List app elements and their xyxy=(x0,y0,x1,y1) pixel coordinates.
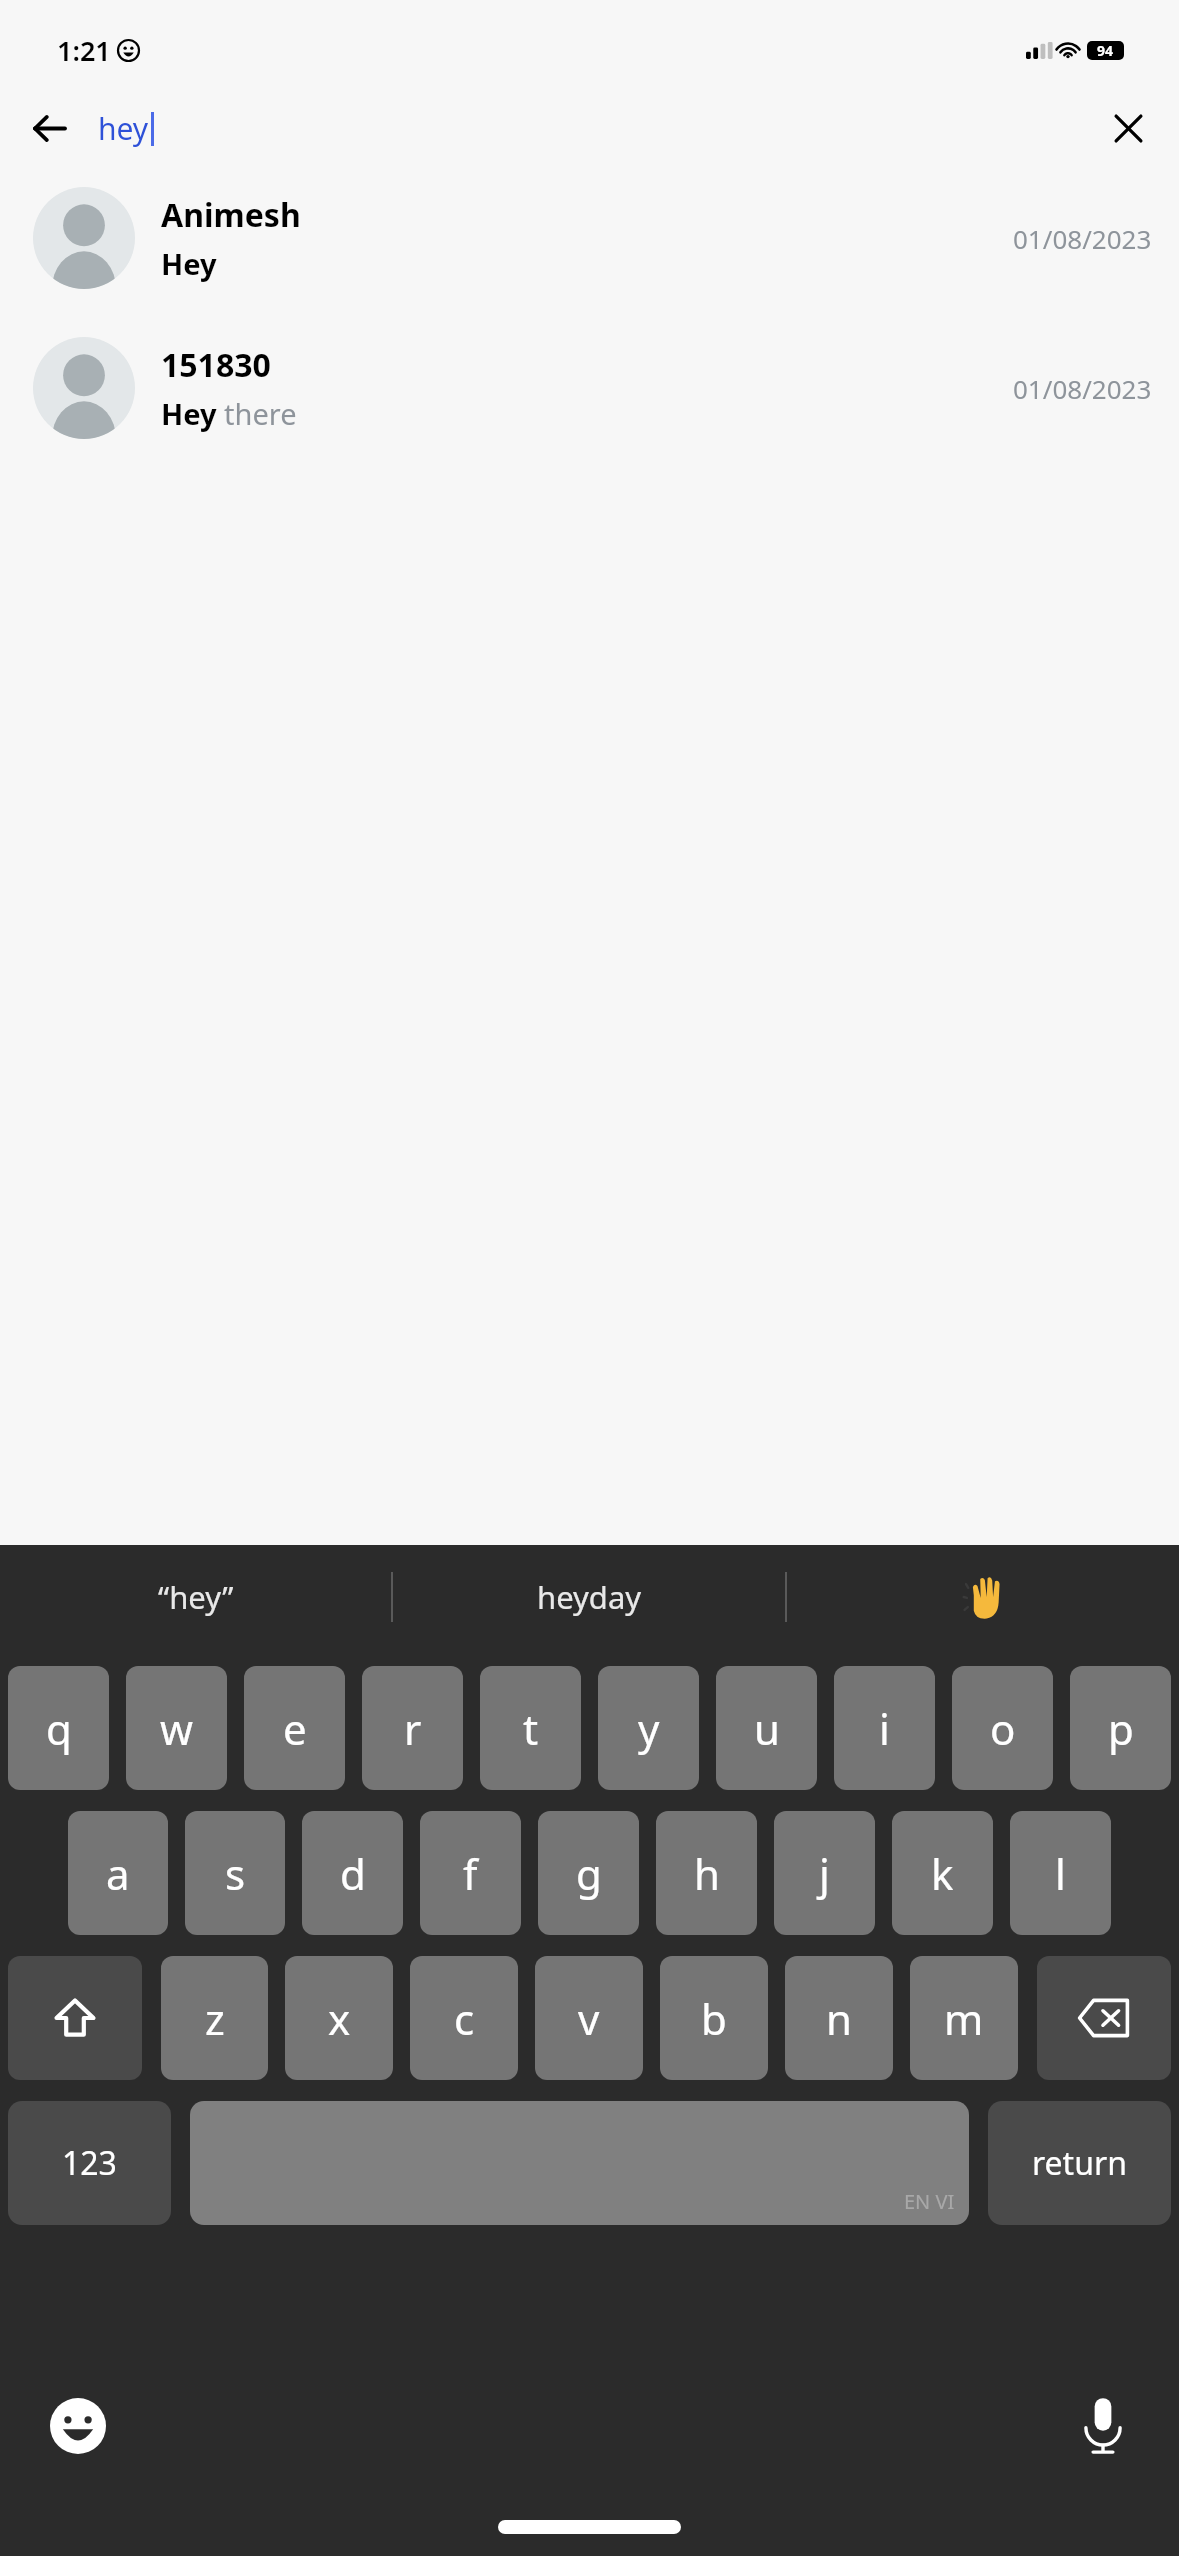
staticText: q xyxy=(46,1700,72,1757)
staticText: 151830 xyxy=(161,343,271,387)
staticText: k xyxy=(931,1845,954,1902)
button[interactable]: i xyxy=(834,1666,935,1790)
button[interactable]: q xyxy=(8,1666,109,1790)
staticText: s xyxy=(225,1845,246,1902)
button[interactable] xyxy=(787,1545,1179,1648)
button[interactable]: 123 xyxy=(8,2101,171,2225)
button[interactable]: y xyxy=(598,1666,699,1790)
button[interactable]: r xyxy=(362,1666,463,1790)
button[interactable]: j xyxy=(774,1811,875,1935)
staticText: m xyxy=(944,1990,984,2047)
staticText: 01/08/2023 xyxy=(1013,221,1152,256)
staticText: 94 xyxy=(1097,41,1114,60)
staticText: b xyxy=(701,1990,727,2047)
button[interactable]: k xyxy=(892,1811,993,1935)
staticText: e xyxy=(283,1700,307,1757)
staticText: w xyxy=(160,1700,194,1757)
staticText: l xyxy=(1055,1845,1066,1902)
button[interactable]: l xyxy=(1010,1811,1111,1935)
button[interactable]: g xyxy=(538,1811,639,1935)
staticText: y xyxy=(638,1700,660,1757)
button[interactable]: Shift xyxy=(8,1956,142,2080)
staticText: c xyxy=(454,1990,475,2047)
staticText: o xyxy=(990,1700,1016,1757)
staticText: t xyxy=(523,1700,539,1757)
button[interactable]: m xyxy=(910,1956,1018,2080)
staticText: return xyxy=(1032,2141,1127,2185)
staticText: 01/08/2023 xyxy=(1013,371,1152,406)
button[interactable]: w xyxy=(126,1666,227,1790)
staticText: g xyxy=(576,1845,602,1902)
button[interactable]: d xyxy=(302,1811,403,1935)
staticText: hey xyxy=(98,108,149,149)
button[interactable]: v xyxy=(535,1956,643,2080)
staticText: a xyxy=(106,1845,130,1902)
button[interactable]: e xyxy=(244,1666,345,1790)
button[interactable]: Voice input xyxy=(1065,2388,1141,2464)
button[interactable]: o xyxy=(952,1666,1053,1790)
button[interactable]: z xyxy=(161,1956,268,2080)
button[interactable]: u xyxy=(716,1666,817,1790)
button[interactable]: Emoji keyboard xyxy=(40,2388,116,2464)
button[interactable]: n xyxy=(785,1956,893,2080)
button[interactable]: Backspace xyxy=(1037,1956,1171,2080)
staticText: 1:21 xyxy=(57,32,111,69)
staticText: j xyxy=(819,1845,830,1902)
button[interactable]: x xyxy=(285,1956,393,2080)
staticText: h xyxy=(694,1845,720,1902)
button[interactable]: Space xyxy=(190,2101,969,2225)
staticText: Hey xyxy=(161,244,217,283)
staticText: EN VI xyxy=(904,2188,955,2215)
button[interactable]: t xyxy=(480,1666,581,1790)
staticText: heyday xyxy=(537,1576,642,1618)
button[interactable]: a xyxy=(68,1811,168,1935)
staticText: u xyxy=(754,1700,780,1757)
staticText: z xyxy=(205,1990,225,2047)
button[interactable]: s xyxy=(185,1811,285,1935)
staticText: p xyxy=(1108,1700,1134,1757)
button[interactable]: Animesh xyxy=(0,187,1179,289)
button[interactable]: Back xyxy=(20,99,78,157)
button[interactable]: b xyxy=(660,1956,768,2080)
button[interactable]: h xyxy=(656,1811,757,1935)
button[interactable]: heyday xyxy=(393,1545,785,1648)
staticText: i xyxy=(879,1700,890,1757)
button[interactable]: “hey” xyxy=(0,1545,391,1648)
staticText: r xyxy=(404,1700,422,1757)
button[interactable]: c xyxy=(410,1956,518,2080)
staticText: Animesh xyxy=(161,193,301,237)
button[interactable]: 151830 xyxy=(0,337,1179,439)
staticText: n xyxy=(826,1990,852,2047)
button[interactable]: p xyxy=(1070,1666,1171,1790)
staticText: f xyxy=(463,1845,478,1902)
staticText: Hey there xyxy=(161,394,297,433)
button[interactable]: return xyxy=(988,2101,1171,2225)
button[interactable]: Clear search xyxy=(1099,99,1157,157)
staticText: 123 xyxy=(62,2141,117,2185)
staticText: d xyxy=(340,1845,366,1902)
staticText: x xyxy=(328,1990,351,2047)
staticText: “hey” xyxy=(158,1576,234,1618)
button[interactable]: f xyxy=(420,1811,521,1935)
staticText: v xyxy=(578,1990,600,2047)
